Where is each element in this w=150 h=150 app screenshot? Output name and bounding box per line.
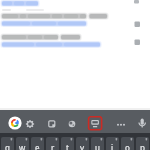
button[interactable]: t <box>61 137 74 150</box>
staticText: y <box>80 142 85 150</box>
button[interactable]: r <box>46 137 59 150</box>
button[interactable] <box>43 115 61 133</box>
button[interactable] <box>133 114 150 132</box>
button[interactable] <box>86 114 104 132</box>
button[interactable] <box>21 115 39 133</box>
button[interactable]: q <box>1 137 14 150</box>
button[interactable]: e <box>31 137 44 150</box>
button[interactable] <box>112 115 130 133</box>
staticText: e <box>35 142 40 150</box>
staticText: t <box>66 142 69 150</box>
staticText: p <box>140 142 145 150</box>
button[interactable] <box>6 114 24 132</box>
button[interactable]: y <box>76 137 89 150</box>
button[interactable] <box>63 115 81 133</box>
staticText: r <box>51 142 55 150</box>
staticText: w <box>19 142 26 150</box>
button[interactable]: i <box>106 137 119 150</box>
staticText: o <box>125 142 130 150</box>
staticText: q <box>5 142 10 150</box>
staticText: u <box>95 142 100 150</box>
staticText: i <box>111 142 114 150</box>
button[interactable]: o <box>121 137 134 150</box>
button[interactable]: u <box>91 137 104 150</box>
button[interactable]: p <box>136 137 149 150</box>
button[interactable]: w <box>16 137 29 150</box>
